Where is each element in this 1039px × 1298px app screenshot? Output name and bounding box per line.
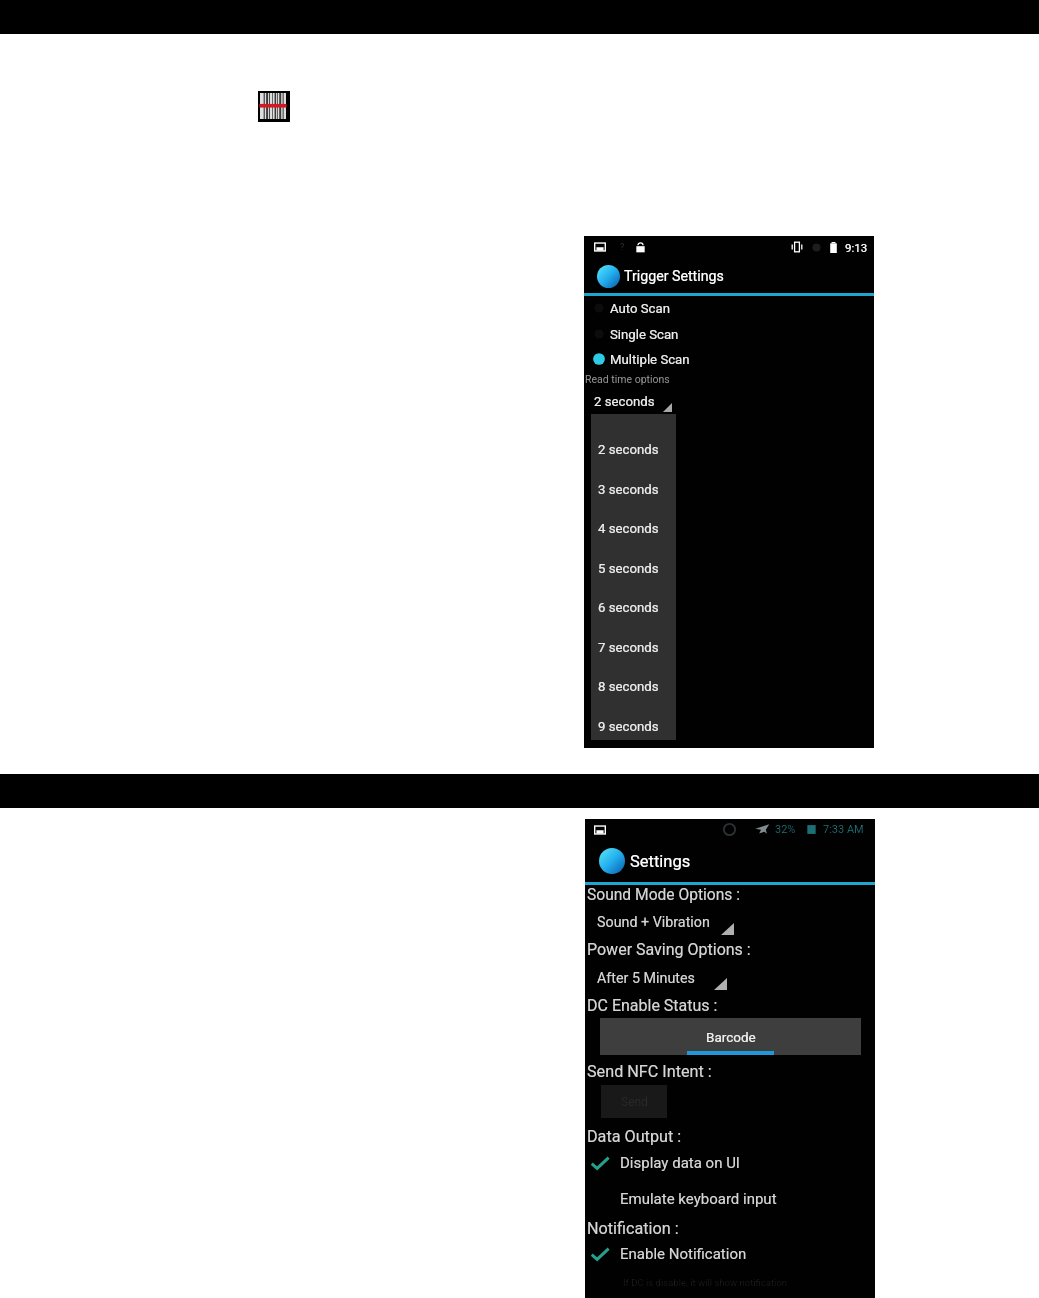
staticText: Settings xyxy=(630,852,691,871)
button[interactable]: Barcode scanner xyxy=(258,91,290,122)
button[interactable]: 3 seconds xyxy=(591,469,676,509)
staticText: Enable Notification xyxy=(620,1245,747,1263)
staticText: Emulate keyboard input xyxy=(620,1190,777,1208)
staticText: Trigger Settings xyxy=(624,268,724,285)
staticText: Send xyxy=(621,1095,648,1109)
button[interactable]: Sound + Vibration xyxy=(597,910,710,934)
staticText: Single Scan xyxy=(610,327,679,342)
staticText: 9:13 xyxy=(845,241,868,254)
staticText: 9 seconds xyxy=(598,719,659,734)
staticText: Notification : xyxy=(587,1219,679,1238)
button[interactable]: 4 seconds xyxy=(591,508,676,548)
staticText: After 5 Minutes xyxy=(597,970,695,987)
staticText: Send NFC Intent : xyxy=(587,1062,712,1081)
staticText: Sound + Vibration xyxy=(597,914,710,931)
button[interactable]: 7 seconds xyxy=(591,627,676,667)
staticText: If DC is disable, it will show notificat… xyxy=(623,1277,788,1288)
staticText: 6 seconds xyxy=(598,600,659,615)
button[interactable]: 2 seconds xyxy=(591,429,676,469)
staticText: Multiple Scan xyxy=(610,352,690,367)
staticText: Auto Scan xyxy=(610,301,670,316)
staticText: 32% xyxy=(775,823,796,836)
staticText: 2 seconds xyxy=(598,442,659,457)
button[interactable]: Barcode xyxy=(600,1018,861,1055)
staticText: Data Output : xyxy=(587,1127,682,1146)
button[interactable]: Enable Notification xyxy=(585,1242,875,1266)
staticText: 5 seconds xyxy=(598,561,659,576)
button[interactable]: Display data on UI xyxy=(585,1151,875,1175)
button[interactable]: Auto Scan xyxy=(584,296,874,320)
button[interactable]: 5 seconds xyxy=(591,548,676,588)
staticText: Display data on UI xyxy=(620,1154,740,1172)
staticText: 7 seconds xyxy=(598,640,659,655)
staticText: Barcode xyxy=(706,1029,756,1045)
staticText: 2 seconds xyxy=(594,394,655,409)
button[interactable]: 9 seconds xyxy=(591,706,676,746)
button[interactable]: 6 seconds xyxy=(591,587,676,627)
staticText: 7:33 AM xyxy=(823,823,864,836)
button[interactable]: Multiple Scan xyxy=(584,347,874,371)
staticText: ? xyxy=(620,242,625,253)
staticText: Sound Mode Options : xyxy=(587,886,741,904)
staticText: DC Enable Status : xyxy=(587,996,718,1015)
staticText: 3 seconds xyxy=(598,482,659,497)
staticText: 4 seconds xyxy=(598,521,659,536)
staticText: 8 seconds xyxy=(598,679,659,694)
button[interactable]: 2 seconds xyxy=(594,389,655,413)
staticText: Power Saving Options : xyxy=(587,940,751,959)
button[interactable]: 8 seconds xyxy=(591,666,676,706)
button[interactable]: After 5 Minutes xyxy=(597,966,695,990)
button[interactable]: Single Scan xyxy=(584,322,874,346)
button[interactable]: Emulate keyboard input xyxy=(585,1187,875,1211)
staticText: Read time options xyxy=(585,373,670,385)
